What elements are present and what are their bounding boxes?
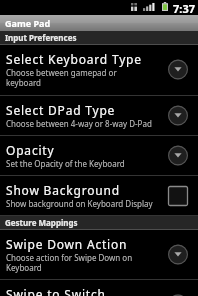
staticText: Gesture Mappings	[5, 217, 78, 228]
button[interactable]: Opacity	[0, 136, 198, 175]
button[interactable]: Open list	[168, 60, 188, 80]
button[interactable]: Swipe Down Action	[0, 230, 198, 279]
button[interactable]: Open list	[168, 245, 188, 265]
staticText: Choose between 4-way or 8-way D-Pad	[6, 118, 152, 129]
staticText: Swipe Down Action	[6, 236, 128, 252]
button[interactable]: Select DPad Type	[0, 96, 198, 135]
staticText: Set the Opacity of the Keyboard	[6, 158, 125, 169]
staticText: Show background on Keyboard Display	[6, 198, 153, 209]
button[interactable]: Open list	[168, 106, 188, 126]
staticText: Show Background	[6, 182, 120, 198]
staticText: Game Pad	[5, 17, 51, 29]
button[interactable]: Show Background checkbox	[168, 186, 188, 206]
staticText: Swipe to Switch	[6, 286, 106, 296]
staticText: Choose between gamepad or keyboard	[6, 67, 153, 89]
button[interactable]: Swipe to Switch	[0, 280, 198, 296]
button[interactable]: Open list	[168, 146, 188, 166]
staticText: Opacity	[6, 142, 55, 158]
button[interactable]: Select Keyboard Type	[0, 45, 198, 95]
button[interactable]: Show Background	[0, 176, 198, 215]
staticText: Input Preferences	[5, 32, 77, 43]
staticText: 7:37	[173, 1, 195, 15]
button[interactable]: Open list	[168, 295, 188, 296]
staticText: Select DPad Type	[6, 102, 116, 118]
staticText: Choose action for Swipe Down on Keyboard	[6, 252, 153, 274]
staticText: Select Keyboard Type	[6, 51, 142, 67]
